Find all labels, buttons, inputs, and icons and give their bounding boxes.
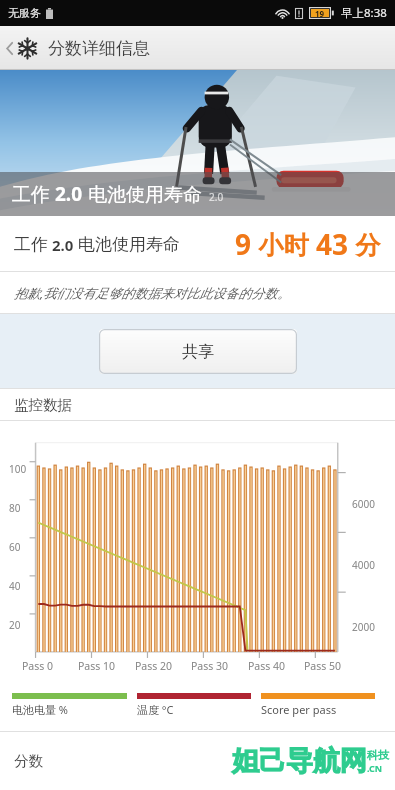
staticText: 19 <box>315 8 325 19</box>
staticText: 2.0 <box>48 235 78 255</box>
staticText: .CN <box>367 762 383 774</box>
staticText: 60 <box>9 540 21 554</box>
staticText: 20 <box>9 618 21 632</box>
staticText: 电池电量 % <box>12 702 69 717</box>
staticText: 监控数据 <box>14 396 72 414</box>
staticText: 温度 °C <box>137 702 174 717</box>
staticText: 电池使用寿命 <box>83 181 202 207</box>
staticText: 抱歉,我们没有足够的数据来对比此设备的分数。 <box>14 284 291 302</box>
staticText: 工作 <box>12 181 55 207</box>
staticText: 2000 <box>352 620 375 634</box>
staticText: 电池使用寿命 <box>78 234 180 255</box>
staticText: 科技 <box>367 748 389 762</box>
staticText: 早上8:38 <box>341 5 387 21</box>
staticText: Pass 10 <box>78 659 116 673</box>
staticText: 80 <box>9 501 21 515</box>
staticText: 分数详细信息 <box>48 38 150 59</box>
staticText: Pass 40 <box>248 659 286 673</box>
staticText: 2.0 <box>209 190 224 204</box>
staticText: 分 <box>349 227 381 261</box>
staticText: 分数 <box>14 752 43 770</box>
staticText: 小时 <box>252 227 316 261</box>
staticText: 共享 <box>182 342 214 362</box>
button[interactable]: 共享 <box>99 329 297 374</box>
staticText: Pass 20 <box>135 659 173 673</box>
staticText: 无服务 <box>8 6 41 20</box>
staticText: Pass 0 <box>22 659 54 673</box>
staticText: Pass 30 <box>191 659 229 673</box>
staticText: 9 <box>235 225 252 263</box>
staticText: 100 <box>9 462 27 476</box>
staticText: Pass 50 <box>304 659 342 673</box>
staticText: Score per pass <box>261 702 337 717</box>
staticText: 4000 <box>352 558 375 572</box>
staticText: 40 <box>9 579 21 593</box>
staticText: 43 <box>316 225 349 263</box>
button[interactable]: Back <box>0 31 158 66</box>
staticText: 6000 <box>352 497 375 511</box>
staticText: 2.0 <box>55 181 83 207</box>
staticText: 妲己导航网 <box>232 744 367 778</box>
staticText: 工作 <box>14 234 48 255</box>
